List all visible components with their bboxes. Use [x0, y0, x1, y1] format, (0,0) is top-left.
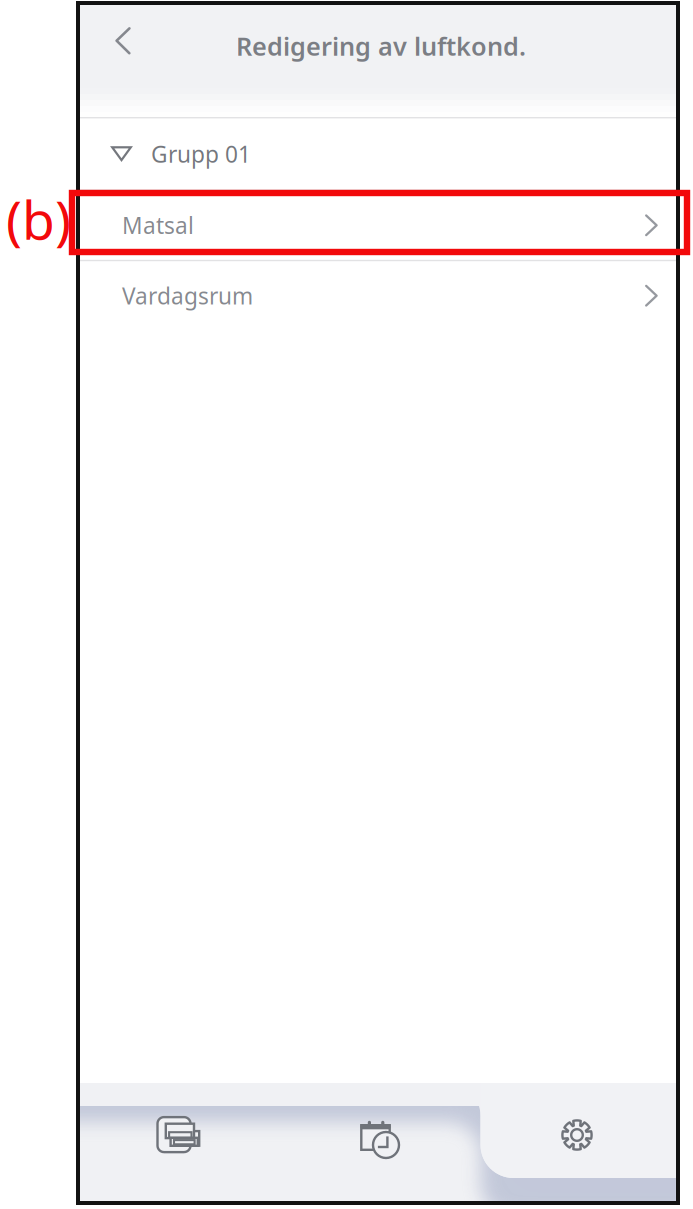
button[interactable]: Devices	[79, 1098, 278, 1172]
staticText: Grupp 01	[151, 139, 251, 169]
button[interactable]: Matsal	[80, 191, 676, 260]
button[interactable]: Settings	[477, 1098, 676, 1172]
staticText: (b)	[6, 184, 71, 254]
button[interactable]: Grupp 01	[80, 118, 676, 189]
button[interactable]: Back	[96, 14, 150, 68]
staticText: Vardagsrum	[122, 281, 253, 311]
staticText: Matsal	[122, 210, 194, 240]
button[interactable]: Vardagsrum	[80, 261, 676, 330]
button[interactable]: Schedule	[278, 1098, 477, 1172]
staticText: Redigering av luftkond.	[236, 29, 526, 63]
